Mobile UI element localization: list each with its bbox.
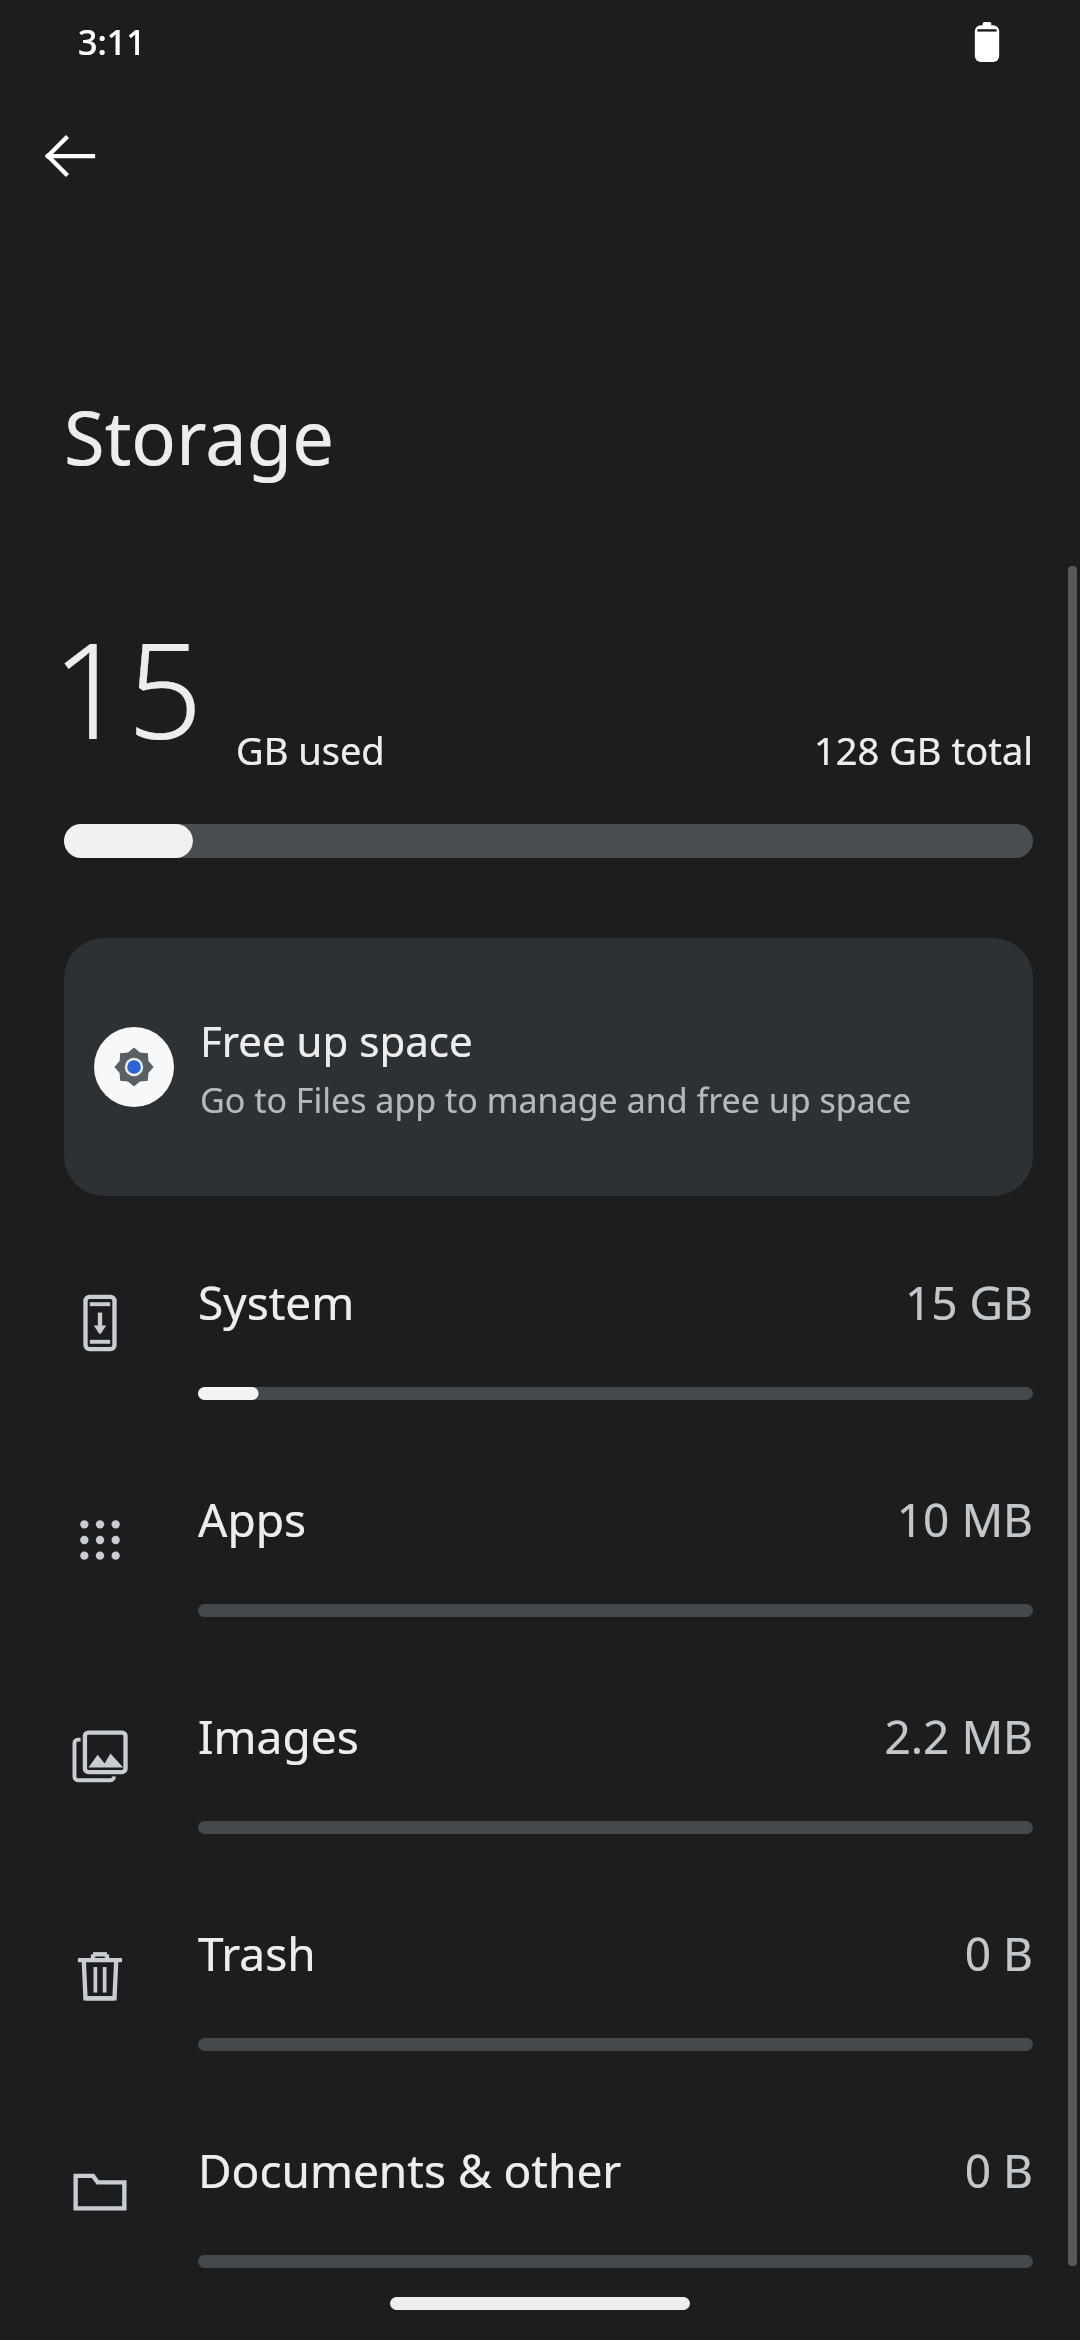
staticText: System bbox=[198, 1271, 355, 1334]
staticText: Storage bbox=[64, 386, 334, 487]
staticText: Go to Files app to manage and free up sp… bbox=[200, 1077, 912, 1123]
staticText: 15 bbox=[52, 598, 203, 778]
button[interactable]: Apps bbox=[0, 1436, 1080, 1653]
staticText: GB used bbox=[236, 724, 385, 776]
button[interactable]: Images bbox=[0, 1653, 1080, 1870]
staticText: 10 MB bbox=[0, 1488, 1033, 1551]
staticText: 15 GB bbox=[0, 1271, 1033, 1334]
staticText: 128 GB total bbox=[0, 724, 1033, 776]
staticText: 0 B bbox=[0, 1922, 1033, 1985]
button[interactable]: System bbox=[0, 1219, 1080, 1436]
button[interactable]: Documents & other bbox=[0, 2087, 1080, 2304]
button[interactable]: Trash bbox=[0, 1870, 1080, 2087]
staticText: Images bbox=[198, 1705, 359, 1768]
staticText: Free up space bbox=[200, 1012, 473, 1069]
staticText: Apps bbox=[198, 1488, 307, 1551]
staticText: Trash bbox=[198, 1922, 316, 1985]
staticText: 2.2 MB bbox=[0, 1705, 1033, 1768]
button[interactable]: Back bbox=[22, 108, 118, 204]
staticText: 0 B bbox=[0, 2139, 1033, 2202]
button[interactable]: Free up space bbox=[64, 938, 1033, 1196]
staticText: 3:11 bbox=[78, 19, 146, 65]
staticText: Documents & other bbox=[198, 2139, 622, 2202]
